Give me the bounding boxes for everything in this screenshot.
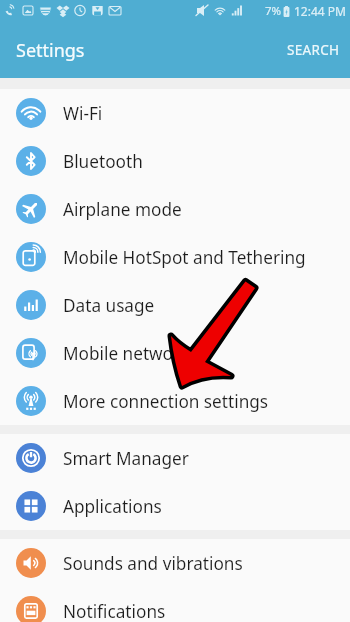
button[interactable]: Mobile HotSpot and Tethering bbox=[0, 233, 350, 281]
button[interactable]: Notifications bbox=[0, 587, 350, 622]
button[interactable]: Smart Manager bbox=[0, 434, 350, 482]
staticText: Mobile networks bbox=[63, 342, 198, 365]
button[interactable]: Data usage bbox=[0, 281, 350, 329]
staticText: Wi-Fi bbox=[63, 102, 103, 125]
button[interactable]: SEARCH bbox=[277, 29, 350, 71]
button[interactable]: Bluetooth bbox=[0, 137, 350, 185]
staticText: 7% bbox=[265, 3, 282, 19]
staticText: Notifications bbox=[63, 600, 166, 622]
staticText: SEARCH bbox=[287, 41, 340, 59]
button[interactable]: More connection settings bbox=[0, 377, 350, 425]
staticText: Data usage bbox=[63, 294, 155, 317]
button[interactable]: Sounds and vibrations bbox=[0, 539, 350, 587]
button[interactable]: Applications bbox=[0, 482, 350, 530]
button[interactable]: Mobile networks bbox=[0, 329, 350, 377]
staticText: Sounds and vibrations bbox=[63, 552, 243, 575]
staticText: Smart Manager bbox=[63, 447, 189, 470]
staticText: Settings bbox=[16, 38, 85, 63]
staticText: 12:44 PM bbox=[294, 3, 346, 19]
button[interactable]: Wi-Fi bbox=[0, 89, 350, 137]
staticText: Applications bbox=[63, 495, 162, 518]
staticText: Bluetooth bbox=[63, 150, 143, 173]
button[interactable]: Airplane mode bbox=[0, 185, 350, 233]
staticText: More connection settings bbox=[63, 390, 269, 413]
staticText: Mobile HotSpot and Tethering bbox=[63, 246, 306, 269]
staticText: Airplane mode bbox=[63, 198, 182, 221]
